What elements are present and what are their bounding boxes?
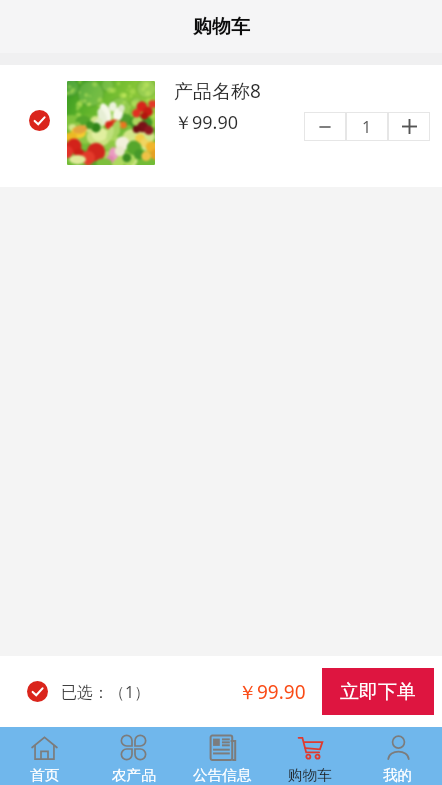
- staticText: ￥99.90: [174, 110, 239, 135]
- staticText: 公告信息: [193, 766, 252, 784]
- button[interactable]: 购物车: [266, 727, 354, 785]
- staticText: 我的: [383, 766, 413, 784]
- staticText: 购物车: [288, 766, 332, 784]
- staticText: ￥99.90: [238, 679, 306, 705]
- button[interactable]: 1: [346, 112, 388, 141]
- staticText: 立即下单: [340, 680, 416, 704]
- button[interactable]: 农产品: [89, 727, 178, 785]
- button[interactable]: 立即下单: [322, 668, 434, 715]
- button[interactable]: 我的: [354, 727, 442, 785]
- button[interactable]: Select all: [27, 681, 48, 702]
- staticText: 1: [362, 116, 372, 138]
- staticText: 产品名称8: [174, 78, 261, 104]
- staticText: 首页: [30, 766, 60, 784]
- button[interactable]: Increase quantity: [388, 112, 430, 141]
- button[interactable]: Deselect 产品名称8: [29, 110, 50, 131]
- staticText: 农产品: [112, 766, 156, 784]
- button[interactable]: 公告信息: [178, 727, 266, 785]
- button[interactable]: Decrease quantity: [304, 112, 346, 141]
- button[interactable]: 首页: [0, 727, 89, 785]
- staticText: 购物车: [193, 15, 250, 39]
- staticText: 已选：（1）: [61, 681, 151, 703]
